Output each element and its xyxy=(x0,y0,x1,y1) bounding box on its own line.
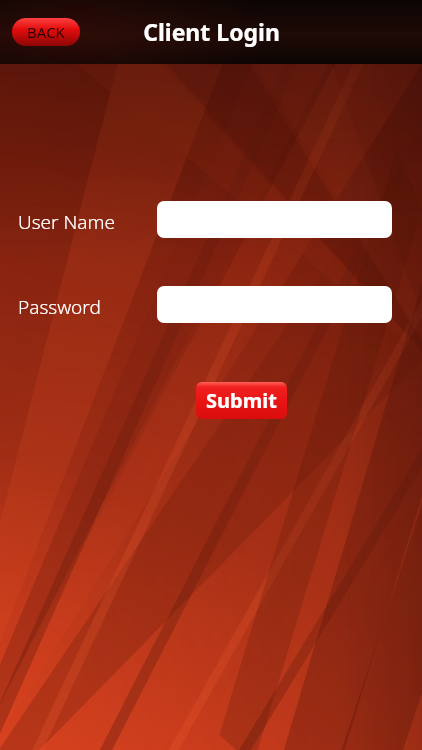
staticText: BACK xyxy=(27,22,65,42)
button[interactable]: Back xyxy=(12,18,80,46)
button[interactable]: Password input xyxy=(157,286,392,323)
staticText: Submit xyxy=(206,387,277,414)
staticText: Client Login xyxy=(143,16,280,47)
staticText: Password xyxy=(18,294,101,320)
button[interactable]: User Name input xyxy=(157,201,392,238)
staticText: User Name xyxy=(18,209,115,235)
button[interactable]: Submit xyxy=(196,382,287,419)
